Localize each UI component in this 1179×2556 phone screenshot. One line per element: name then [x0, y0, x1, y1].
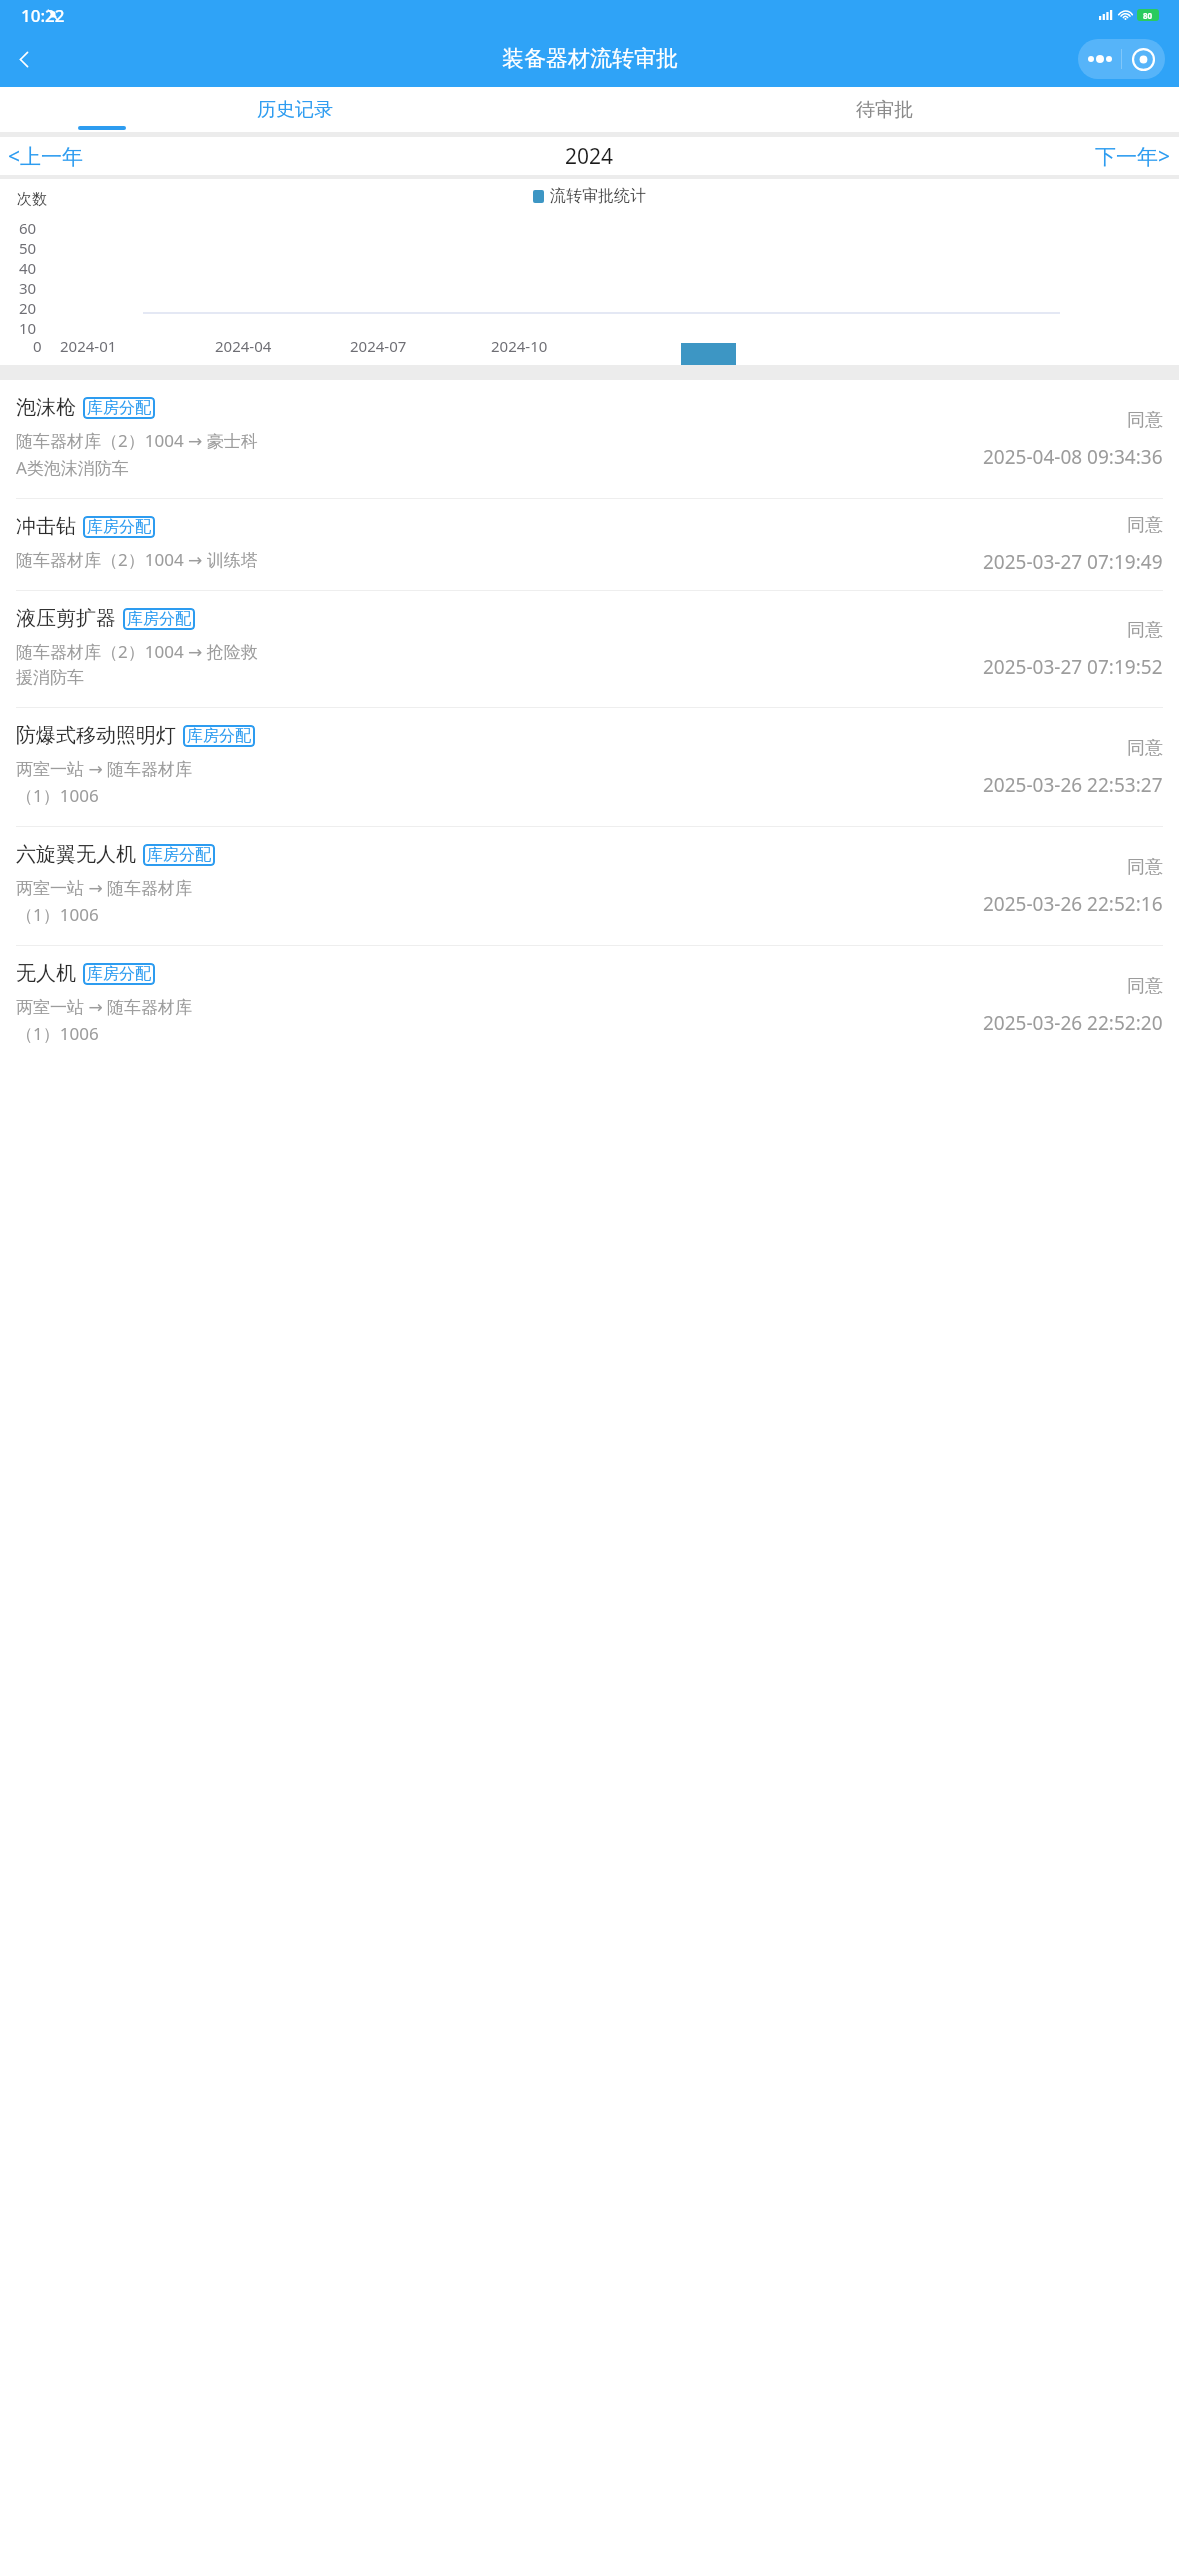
staticText: 2024-04: [215, 336, 272, 356]
button[interactable]: Close: [1122, 39, 1165, 79]
staticText: 冲击钻: [16, 514, 76, 539]
staticText: 同意: [1127, 514, 1163, 537]
staticText: 库房分配: [87, 517, 151, 537]
staticText: 防爆式移动照明灯: [16, 723, 176, 748]
staticText: （1）1006: [16, 1022, 99, 1045]
staticText: 2024: [565, 142, 614, 171]
button[interactable]: 历史记录: [0, 87, 589, 132]
staticText: 无人机: [16, 961, 76, 986]
staticText: <上一年: [8, 142, 84, 171]
staticText: 2024-10: [491, 336, 548, 356]
button[interactable]: 防爆式移动照明灯: [0, 708, 1179, 826]
staticText: 2025-03-26 22:52:16: [983, 891, 1163, 917]
staticText: 库房分配: [187, 726, 251, 746]
staticText: （1）1006: [16, 903, 99, 926]
staticText: 装备器材流转审批: [502, 45, 678, 73]
staticText: 库房分配: [87, 964, 151, 984]
button[interactable]: More options: [1078, 39, 1121, 79]
button[interactable]: 液压剪扩器: [0, 591, 1179, 707]
staticText: 2024-01: [60, 336, 117, 356]
button[interactable]: 泡沫枪: [0, 380, 1179, 498]
staticText: 库房分配: [87, 398, 151, 418]
staticText: 液压剪扩器: [16, 606, 116, 631]
staticText: 同意: [1127, 975, 1163, 998]
staticText: 0: [33, 336, 42, 356]
staticText: 库房分配: [147, 845, 211, 865]
staticText: 泡沫枪: [16, 395, 76, 420]
staticText: 次数: [17, 190, 47, 209]
staticText: 2025-03-26 22:53:27: [983, 772, 1163, 798]
staticText: 50: [19, 238, 37, 258]
staticText: 两室一站 → 随车器材库: [16, 876, 193, 899]
staticText: （1）1006: [16, 784, 99, 807]
staticText: 待审批: [856, 98, 913, 122]
staticText: 同意: [1127, 737, 1163, 760]
button[interactable]: 待审批: [589, 87, 1179, 132]
staticText: 2025-03-27 07:19:52: [983, 654, 1163, 680]
staticText: 10: [19, 318, 37, 338]
staticText: 2025-04-08 09:34:36: [983, 444, 1163, 470]
staticText: A类泡沫消防车: [16, 456, 129, 479]
staticText: 80: [1143, 10, 1153, 21]
button[interactable]: Back: [0, 35, 48, 83]
staticText: 下一年>: [1095, 142, 1171, 171]
staticText: 两室一站 → 随车器材库: [16, 757, 193, 780]
button[interactable]: 冲击钻: [0, 499, 1179, 590]
staticText: 随车器材库（2）1004 → 训练塔: [16, 548, 258, 571]
staticText: 历史记录: [257, 98, 333, 122]
button[interactable]: 六旋翼无人机: [0, 827, 1179, 945]
staticText: 两室一站 → 随车器材库: [16, 995, 193, 1018]
staticText: 60: [19, 218, 37, 238]
button[interactable]: 无人机: [0, 946, 1179, 1064]
staticText: 2025-03-27 07:19:49: [983, 549, 1163, 575]
staticText: 流转审批统计: [550, 186, 646, 206]
staticText: 20: [19, 298, 37, 318]
staticText: 随车器材库（2）1004 → 豪士科: [16, 429, 258, 452]
staticText: 30: [19, 278, 37, 298]
staticText: 同意: [1127, 409, 1163, 432]
staticText: 2025-03-26 22:52:20: [983, 1010, 1163, 1036]
staticText: 40: [19, 258, 37, 278]
staticText: 库房分配: [127, 609, 191, 629]
staticText: 援消防车: [16, 667, 84, 688]
staticText: 同意: [1127, 856, 1163, 879]
staticText: 10:22: [21, 4, 65, 27]
button[interactable]: 下一年>: [786, 137, 1179, 175]
staticText: 同意: [1127, 619, 1163, 642]
staticText: 六旋翼无人机: [16, 842, 136, 867]
button[interactable]: <上一年: [0, 137, 393, 175]
staticText: 2024-07: [350, 336, 407, 356]
staticText: 随车器材库（2）1004 → 抢险救: [16, 640, 258, 663]
